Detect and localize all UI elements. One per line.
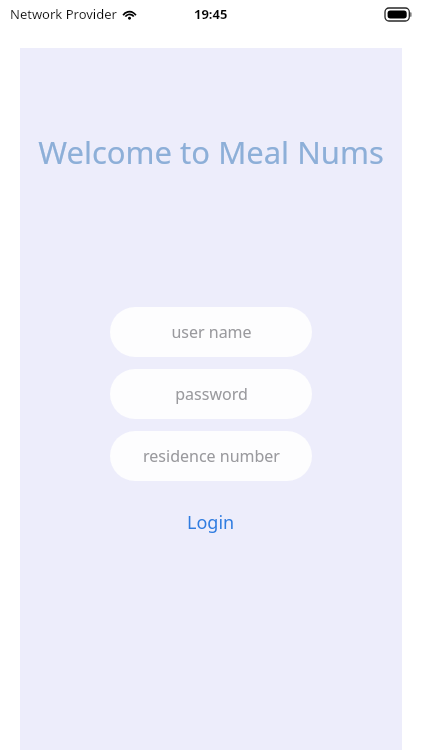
staticText: Network Provider bbox=[10, 5, 117, 23]
other: Battery full bbox=[385, 8, 412, 21]
staticText: Login bbox=[187, 510, 235, 535]
staticText: Welcome to Meal Nums bbox=[38, 131, 384, 173]
button[interactable]: residence number bbox=[110, 431, 312, 481]
button[interactable]: user name bbox=[110, 307, 312, 357]
staticText: user name bbox=[171, 321, 252, 343]
other: Wi-Fi signal bbox=[122, 9, 137, 20]
staticText: residence number bbox=[143, 445, 280, 467]
button[interactable]: Login bbox=[173, 505, 249, 540]
staticText: password bbox=[175, 383, 248, 405]
staticText: 19:45 bbox=[194, 5, 228, 23]
button[interactable]: password bbox=[110, 369, 312, 419]
